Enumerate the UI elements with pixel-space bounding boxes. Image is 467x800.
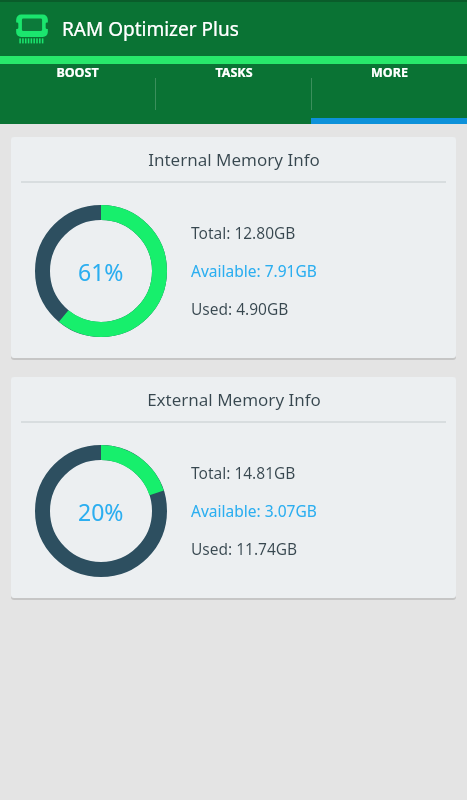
staticText: External Memory Info (147, 388, 321, 411)
staticText: RAM Optimizer Plus (62, 16, 239, 42)
staticText: Internal Memory Info (148, 148, 320, 171)
staticText: Total: 14.81GB (191, 462, 296, 483)
button[interactable]: Internal Memory Info (11, 137, 456, 358)
button[interactable]: BOOST (0, 64, 155, 81)
button[interactable]: RAM Optimizer logo (14, 11, 50, 47)
staticText: Available: 3.07GB (191, 500, 317, 521)
button[interactable]: External Memory Info (11, 377, 456, 598)
staticText: MORE (371, 64, 408, 81)
staticText: BOOST (56, 64, 99, 81)
staticText: Available: 7.91GB (191, 260, 317, 281)
button[interactable]: TASKS (156, 64, 311, 81)
staticText: Total: 12.80GB (191, 222, 296, 243)
staticText: Used: 4.90GB (191, 298, 289, 319)
staticText: TASKS (215, 64, 253, 81)
staticText: 20% (78, 496, 124, 527)
staticText: 61% (78, 256, 124, 287)
staticText: Used: 11.74GB (191, 538, 298, 559)
button[interactable]: MORE (312, 64, 467, 81)
